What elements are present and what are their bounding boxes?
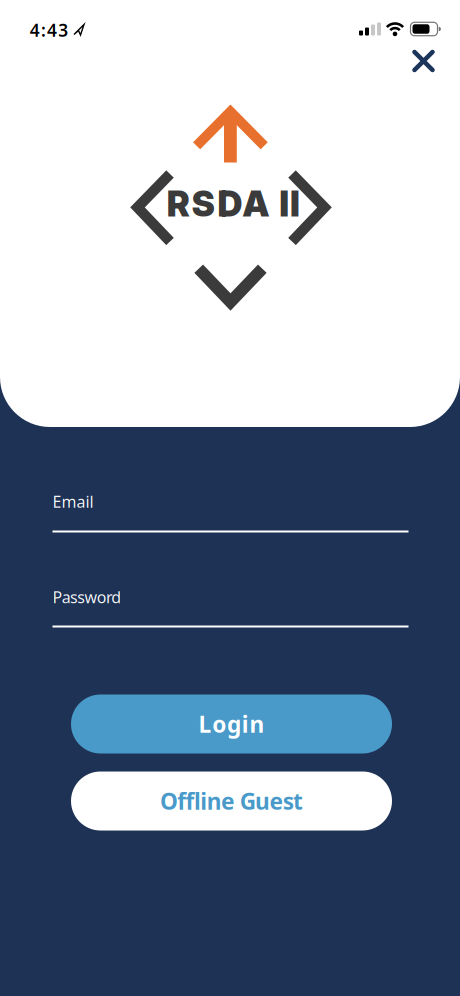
staticText: R (167, 183, 190, 225)
staticText: Offline Guest (160, 786, 303, 816)
button[interactable]: Close (411, 49, 435, 73)
staticText: S (191, 183, 215, 225)
staticText: Password (52, 586, 121, 608)
staticText: I (290, 183, 300, 225)
textField[interactable]: Email (52, 493, 408, 523)
staticText: D (217, 183, 242, 225)
button[interactable]: Offline Guest (71, 771, 392, 830)
staticText: Email (52, 493, 111, 523)
staticText: A (242, 183, 269, 225)
staticText: Login (198, 709, 265, 739)
staticText: Password (52, 588, 156, 618)
textField[interactable]: Password (52, 588, 408, 618)
staticText: Email (52, 491, 93, 512)
button[interactable]: Login (71, 694, 392, 753)
staticText: I (279, 183, 289, 225)
staticText: 4:43 (30, 18, 68, 41)
